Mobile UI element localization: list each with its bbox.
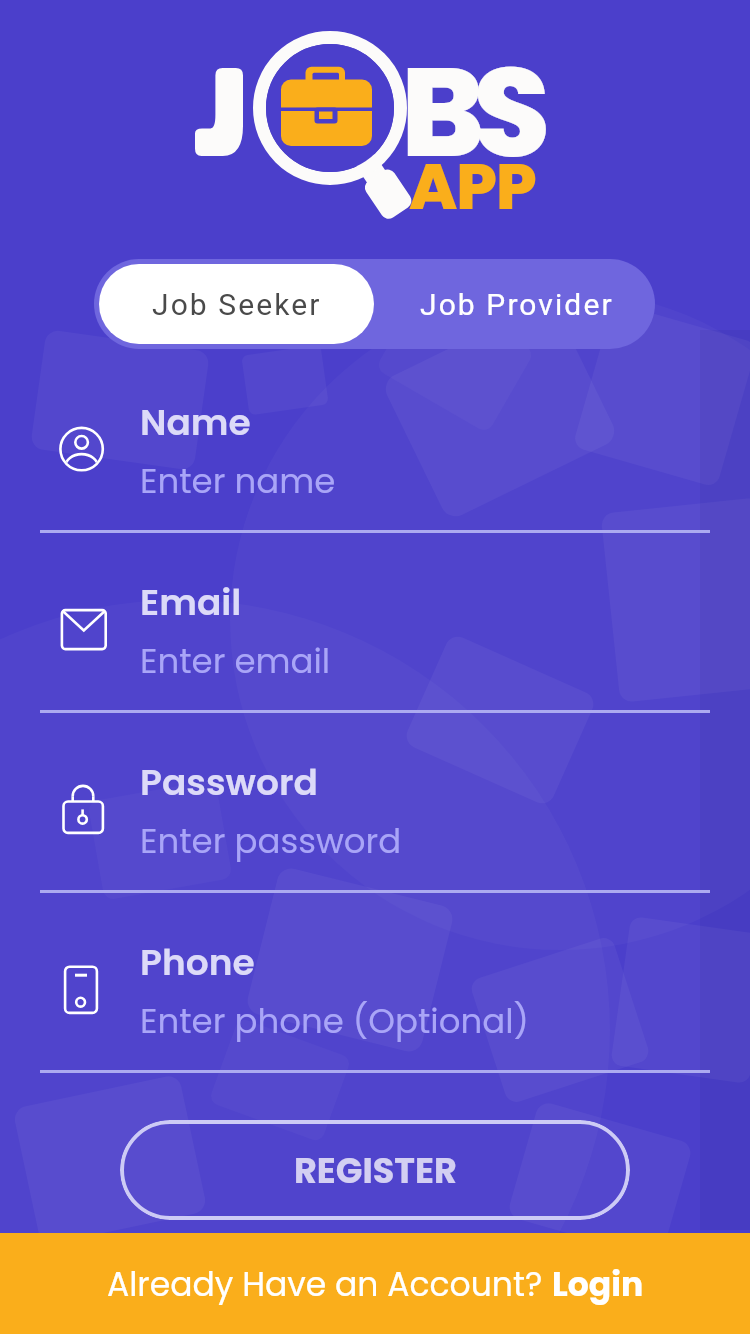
staticText: Enter password — [140, 817, 402, 865]
staticText: Enter phone (Optional) — [140, 997, 530, 1045]
button[interactable]: Name — [0, 353, 750, 533]
staticText: Email — [140, 577, 242, 627]
staticText: Name — [140, 397, 251, 447]
staticText: Enter email — [140, 637, 331, 685]
staticText: Enter name — [140, 457, 336, 505]
staticText: Job Provider — [420, 287, 614, 322]
staticText: Already Have an Account? — [107, 1261, 552, 1307]
other: Email — [52, 599, 112, 659]
other: Name — [52, 419, 112, 479]
other: Password — [52, 779, 112, 839]
button[interactable]: Already Have an Account? — [0, 1233, 750, 1334]
button[interactable]: REGISTER — [120, 1120, 630, 1220]
button[interactable]: Phone — [0, 893, 750, 1073]
staticText: APP — [409, 142, 536, 232]
staticText: Password — [140, 757, 318, 807]
button[interactable]: Email — [0, 533, 750, 713]
staticText: Phone — [140, 937, 255, 987]
staticText: REGISTER — [294, 1146, 457, 1195]
other: Phone — [52, 959, 112, 1019]
staticText: BS — [401, 26, 540, 200]
button[interactable]: Job Provider — [379, 259, 655, 349]
button[interactable]: Password — [0, 713, 750, 893]
staticText: Job Seeker — [152, 287, 322, 322]
button[interactable]: Job Seeker — [99, 264, 374, 344]
staticText: Login — [552, 1261, 644, 1307]
